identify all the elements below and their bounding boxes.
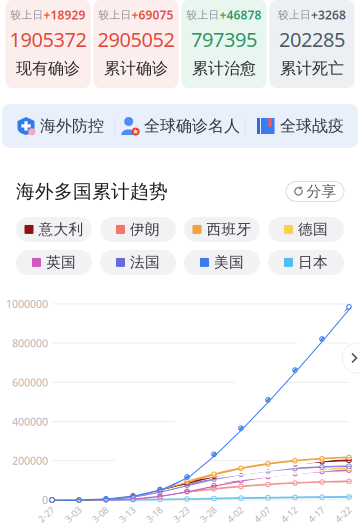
- button[interactable]: 全球战疫: [246, 104, 354, 148]
- button[interactable]: 意大利: [16, 217, 92, 242]
- button[interactable]: 美国: [184, 250, 260, 275]
- staticText: 较上日: [278, 8, 311, 21]
- staticText: 1000000: [6, 297, 48, 311]
- staticText: 较上日: [186, 8, 219, 21]
- button[interactable]: 伊朗: [100, 217, 176, 242]
- staticText: 800000: [12, 336, 48, 350]
- staticText: 全球确诊名人: [144, 116, 240, 136]
- staticText: 西班牙: [206, 220, 251, 238]
- staticText: 分享: [306, 182, 336, 200]
- staticText: 1905372: [9, 26, 86, 52]
- staticText: +18929: [43, 7, 85, 23]
- staticText: 202285: [279, 26, 345, 52]
- staticText: 2905052: [97, 26, 174, 52]
- staticText: 4-12: [280, 508, 298, 521]
- button[interactable]: 英国: [16, 250, 92, 275]
- button[interactable]: 日本: [268, 250, 344, 275]
- staticText: 累计确诊: [104, 58, 168, 78]
- staticText: 600000: [12, 375, 48, 389]
- staticText: +69075: [131, 7, 173, 23]
- button[interactable]: 海外防控: [6, 104, 114, 148]
- button[interactable]: 分享: [286, 181, 344, 201]
- staticText: 3-13: [118, 508, 136, 521]
- staticText: 3-23: [172, 508, 190, 521]
- staticText: 4-22: [334, 508, 352, 521]
- staticText: 现有确诊: [16, 58, 80, 78]
- staticText: 400000: [12, 414, 48, 429]
- staticText: 伊朗: [130, 220, 160, 238]
- button[interactable]: 法国: [100, 250, 176, 275]
- staticText: +3268: [311, 7, 346, 23]
- staticText: 797395: [191, 26, 257, 52]
- button[interactable]: 全球确诊名人: [115, 104, 245, 148]
- staticText: 累计死亡: [280, 58, 344, 78]
- staticText: 3-08: [91, 508, 109, 521]
- staticText: 4-02: [226, 508, 244, 521]
- staticText: 3-28: [199, 508, 217, 521]
- staticText: 海外多国累计趋势: [16, 180, 168, 203]
- button[interactable]: Next chart: [342, 343, 360, 373]
- staticText: 0: [42, 493, 48, 507]
- button[interactable]: 西班牙: [184, 217, 260, 242]
- staticText: 德国: [298, 220, 328, 238]
- staticText: 海外防控: [40, 116, 104, 136]
- button[interactable]: 德国: [268, 217, 344, 242]
- staticText: 3-03: [64, 508, 82, 521]
- staticText: 4-17: [307, 508, 325, 521]
- staticText: 累计治愈: [192, 58, 256, 78]
- staticText: +46878: [219, 7, 261, 23]
- staticText: 3-18: [145, 508, 163, 521]
- staticText: 美国: [214, 253, 244, 271]
- staticText: 2-27: [37, 508, 55, 521]
- staticText: 较上日: [10, 8, 43, 21]
- staticText: 法国: [130, 253, 160, 271]
- staticText: 200000: [12, 454, 48, 468]
- staticText: 全球战疫: [280, 116, 344, 136]
- staticText: 英国: [46, 253, 76, 271]
- staticText: 日本: [298, 253, 328, 271]
- staticText: 较上日: [98, 8, 131, 21]
- staticText: 4-07: [253, 508, 271, 521]
- staticText: 意大利: [38, 220, 83, 238]
